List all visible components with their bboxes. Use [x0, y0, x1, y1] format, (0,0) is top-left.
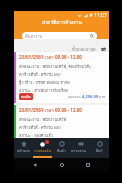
staticText: สถานะ : ดำเนินการเรียบร้อย	[19, 87, 68, 93]
button[interactable]: Filter	[100, 46, 106, 52]
staticText: ค่าจ้างที่ได้ : ครึ่งวัน 600	[19, 71, 61, 77]
staticText: 11:07	[94, 12, 107, 19]
staticText: 23/01/2561 เวลา 09.00 - 12.00	[19, 54, 82, 61]
staticText: ค่าจ้างที่ได้ : ครึ่งวัน 600	[19, 124, 61, 130]
staticText: บาท	[98, 94, 106, 100]
button[interactable]: Back	[30, 160, 40, 170]
button[interactable]: อื่นๆ	[90, 138, 109, 158]
button[interactable]: 23/01/2561 เวลา 09.00 - 12.00	[14, 105, 109, 138]
button[interactable]: 23/01/2561 เวลา 09.00 - 12.00	[14, 52, 109, 103]
staticText: ทั้งหมด/ล่าสุด	[72, 46, 96, 52]
staticText: ประวัติการจ้างงาน	[42, 18, 82, 26]
button[interactable]: งานของฉัน	[33, 138, 52, 158]
staticText: หน้าแรก	[17, 148, 30, 154]
staticText: 23/01/2561 เวลา 09.00 - 12.00	[19, 107, 82, 114]
button[interactable]: Home	[57, 160, 67, 170]
staticText: สินค้า	[57, 148, 66, 154]
staticText: ความร่วมมือ	[71, 148, 90, 154]
staticText: ค้นหางาน	[25, 33, 43, 39]
button[interactable]: หน้าแรก	[14, 138, 33, 158]
staticText: ยกเลิก	[21, 94, 31, 99]
staticText: งานของฉัน	[34, 148, 52, 154]
staticText: สถานะ : จองคิวแล้ว	[19, 132, 54, 138]
button[interactable]: สินค้า	[52, 138, 71, 158]
staticText: อื่นๆ	[96, 148, 103, 154]
button[interactable]: ยกเลิก	[21, 94, 31, 99]
button[interactable]: ค้นหางาน	[22, 32, 97, 40]
staticText: ลักษณะงาน : พนักงานเสิร์ฟ, จัดเตรียมโต๊ะ	[19, 63, 92, 69]
staticText: ผู้ว่าจ้าง : บริษัท ทดสอบ จำกัด	[19, 79, 70, 85]
staticText: 4,296.00	[82, 94, 98, 99]
button[interactable]: ความร่วมมือ	[71, 138, 90, 158]
staticText: ยอดรวม	[68, 94, 82, 100]
staticText: ลักษณะงาน : พนักงานเสิร์ฟ	[19, 116, 66, 122]
button[interactable]: Recents	[83, 160, 93, 170]
